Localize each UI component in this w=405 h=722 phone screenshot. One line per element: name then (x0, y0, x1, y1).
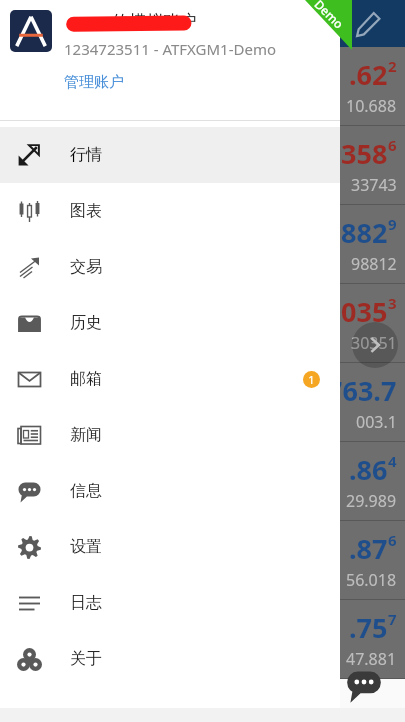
button[interactable]: Next (352, 322, 398, 368)
button[interactable]: Chat (344, 666, 384, 706)
staticText: 信息 (70, 481, 102, 501)
staticText: 新闻 (70, 425, 102, 445)
staticText: 30351 (351, 332, 397, 354)
button[interactable]: Edit (355, 11, 381, 37)
staticText: 33743 (351, 174, 397, 196)
staticText: 的模拟账户 (112, 11, 197, 32)
staticText: 1234723511 - ATFXGM1-Demo (64, 39, 277, 59)
staticText: 9 (388, 214, 397, 234)
staticText: 管理账户 (64, 73, 124, 92)
staticText: .86 (349, 451, 388, 488)
staticText: 98812 (351, 253, 397, 275)
button[interactable]: 新闻 (0, 407, 340, 463)
button[interactable]: 邮箱 (0, 351, 340, 407)
staticText: 29.989 (346, 490, 397, 512)
staticText: .62 (349, 56, 388, 93)
button[interactable]: 行情 (0, 127, 340, 183)
staticText: 6 (388, 530, 397, 550)
staticText: 035 (341, 293, 388, 330)
staticText: 关于 (70, 649, 102, 669)
button[interactable]: 图表 (0, 183, 340, 239)
staticText: 3 (388, 293, 397, 313)
staticText: Demo (311, 0, 348, 32)
staticText: 历史 (70, 313, 102, 333)
button[interactable]: 设置 (0, 519, 340, 575)
staticText: 交易 (70, 257, 102, 277)
staticText: 6 (388, 135, 397, 155)
button[interactable]: 交易 (0, 239, 340, 295)
staticText: 图表 (70, 201, 102, 221)
staticText: 882 (341, 214, 388, 251)
button[interactable]: 的模拟账户 (0, 0, 340, 115)
staticText: 7 (388, 609, 397, 629)
staticText: 763.7 (327, 372, 397, 409)
button[interactable]: 信息 (0, 463, 340, 519)
staticText: .87 (349, 530, 388, 567)
staticText: 47.881 (346, 648, 397, 670)
button[interactable]: 历史 (0, 295, 340, 351)
staticText: 行情 (70, 145, 102, 165)
button[interactable]: 管理账户 (64, 73, 124, 92)
staticText: 日志 (70, 593, 102, 613)
button[interactable]: 日志 (0, 575, 340, 631)
staticText: 003.1 (356, 411, 397, 433)
staticText: 邮箱 (70, 369, 102, 389)
staticText: 4 (388, 451, 397, 471)
staticText: 2 (388, 56, 397, 76)
staticText: 1 (308, 372, 315, 387)
staticText: 10.688 (346, 95, 397, 117)
staticText: 56.018 (346, 569, 397, 591)
staticText: 358 (341, 135, 388, 172)
button[interactable]: 关于 (0, 631, 340, 687)
staticText: .75 (349, 609, 388, 646)
staticText: 设置 (70, 537, 102, 557)
